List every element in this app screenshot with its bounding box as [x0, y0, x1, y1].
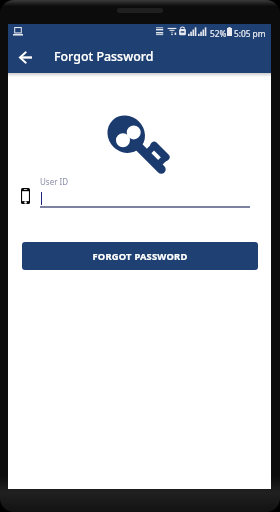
button[interactable]: FORGOT PASSWORD: [22, 242, 258, 270]
button[interactable]: Back: [13, 45, 37, 69]
staticText: FORGOT PASSWORD: [92, 250, 188, 263]
staticText: User ID: [40, 176, 69, 187]
staticText: 52%: [210, 28, 227, 39]
staticText: Forgot Password: [54, 48, 154, 65]
staticText: 5:05 pm: [234, 28, 266, 39]
